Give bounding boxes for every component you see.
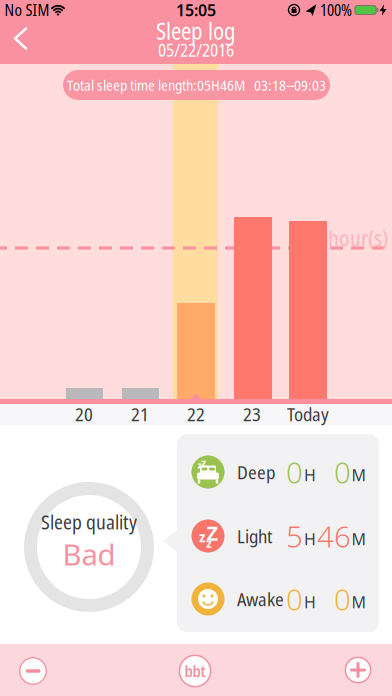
- staticText: 05/22/2016: [158, 38, 234, 62]
- staticText: Sleep quality: [41, 509, 137, 535]
- staticText: H: [304, 528, 316, 550]
- staticText: 0: [334, 452, 351, 492]
- staticText: 22: [187, 401, 205, 427]
- staticText: z: [201, 455, 206, 470]
- staticText: M: [351, 591, 366, 613]
- staticText: 0: [286, 579, 303, 619]
- button[interactable]: [0, 18, 44, 58]
- button[interactable]: bbt: [178, 654, 211, 687]
- staticText: 15:05: [176, 0, 216, 21]
- staticText: H: [304, 591, 316, 613]
- staticText: Sleep log: [156, 16, 236, 46]
- staticText: Z: [206, 520, 218, 546]
- staticText: bbt: [184, 660, 205, 682]
- staticText: Deep: [237, 459, 275, 485]
- staticText: hour(s): [328, 223, 388, 253]
- staticText: z: [197, 460, 201, 471]
- staticText: Total sleep time length:05H46M 03:18--09…: [67, 75, 326, 95]
- staticText: Light: [237, 523, 272, 549]
- button[interactable]: [344, 656, 371, 683]
- staticText: 46: [317, 516, 351, 556]
- staticText: Today: [287, 401, 329, 427]
- staticText: z: [206, 535, 212, 551]
- staticText: 20: [75, 401, 93, 427]
- staticText: 23: [243, 401, 261, 427]
- staticText: 0: [286, 452, 303, 492]
- staticText: H: [304, 464, 316, 486]
- staticText: 21: [131, 401, 149, 427]
- staticText: No SIM: [4, 0, 49, 20]
- staticText: z: [199, 528, 206, 546]
- button[interactable]: [19, 657, 47, 685]
- staticText: M: [351, 464, 366, 486]
- staticText: 100%: [320, 0, 352, 20]
- staticText: Bad: [62, 534, 115, 573]
- staticText: 5: [286, 516, 303, 556]
- staticText: M: [351, 528, 366, 550]
- staticText: Awake: [237, 586, 284, 612]
- staticText: 0: [334, 579, 351, 619]
